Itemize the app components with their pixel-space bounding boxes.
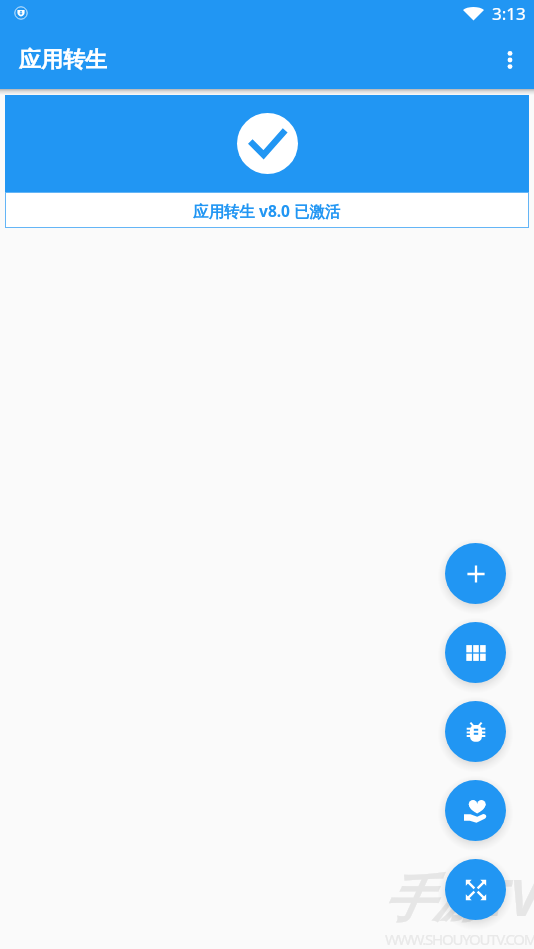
- button[interactable]: Apps: [445, 622, 506, 683]
- button[interactable]: 应用转生 v8.0 已激活: [5, 95, 529, 228]
- button[interactable]: Fullscreen: [445, 859, 506, 920]
- staticText: 手游TV: [383, 863, 534, 931]
- button[interactable]: More options: [486, 36, 534, 84]
- button[interactable]: Add: [445, 543, 506, 604]
- staticText: 应用转生: [19, 46, 107, 74]
- button[interactable]: Donate: [445, 780, 506, 841]
- staticText: 应用转生 v8.0 已激活: [193, 200, 341, 221]
- staticText: 3:13: [492, 2, 526, 25]
- staticText: WWW.SHOUYOUTV.COM: [385, 929, 534, 949]
- button[interactable]: Bug report: [445, 701, 506, 762]
